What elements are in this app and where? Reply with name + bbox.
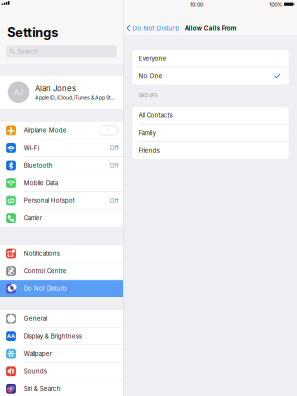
staticText: Off bbox=[109, 197, 118, 204]
staticText: AJ bbox=[14, 88, 23, 97]
button[interactable]: Control Centre bbox=[0, 263, 123, 280]
button[interactable]: Notifications bbox=[0, 245, 123, 262]
staticText: Settings bbox=[7, 25, 58, 40]
button[interactable]: Wallpaper bbox=[0, 345, 123, 362]
button[interactable]: Personal Hotspot bbox=[0, 192, 123, 209]
staticText: Off bbox=[109, 161, 118, 169]
button[interactable]: Airplane Mode bbox=[0, 122, 123, 139]
button[interactable]: No One bbox=[132, 67, 289, 84]
button[interactable]: All Contacts bbox=[132, 107, 289, 124]
staticText: Wi-Fi bbox=[24, 144, 39, 152]
button[interactable]: Do Not Disturb bbox=[0, 280, 123, 297]
button[interactable]: Friends bbox=[132, 142, 289, 159]
staticText: GROUPS bbox=[139, 93, 158, 98]
staticText: Mobile Data bbox=[24, 179, 58, 187]
staticText: Everyone bbox=[139, 55, 167, 62]
staticText: Alan Jones bbox=[35, 84, 76, 93]
staticText: Search bbox=[17, 48, 38, 55]
button[interactable]: Bluetooth bbox=[0, 157, 123, 174]
button[interactable]: AJ bbox=[0, 76, 123, 109]
button[interactable]: Mobile Data bbox=[0, 174, 123, 191]
staticText: All Contacts bbox=[139, 112, 173, 119]
staticText: Sounds bbox=[24, 368, 47, 375]
staticText: Wallpaper bbox=[24, 350, 52, 357]
button[interactable]: Family bbox=[132, 124, 289, 141]
staticText: Personal Hotspot bbox=[24, 197, 75, 204]
staticText: Off bbox=[109, 144, 118, 152]
staticText: Display & Brightness bbox=[24, 332, 82, 340]
staticText: Notifications bbox=[24, 250, 60, 257]
staticText: Carrier bbox=[24, 214, 42, 222]
staticText: Do Not Disturb bbox=[24, 285, 67, 292]
button[interactable]: Siri & Search bbox=[0, 380, 123, 396]
staticText: Airplane Mode bbox=[24, 127, 67, 134]
staticText: Do Not Disturb bbox=[132, 24, 179, 32]
staticText: 10:00 bbox=[190, 1, 203, 8]
button[interactable]: Sounds bbox=[0, 363, 123, 380]
staticText: Control Centre bbox=[24, 267, 67, 275]
staticText: Bluetooth bbox=[24, 162, 53, 169]
staticText: AA bbox=[7, 333, 15, 339]
button[interactable]: Everyone bbox=[132, 50, 289, 67]
staticText: General bbox=[24, 315, 47, 322]
button[interactable]: AA bbox=[0, 328, 123, 345]
staticText: Family bbox=[139, 129, 156, 137]
button[interactable]: Do Not Disturb bbox=[124, 21, 185, 35]
staticText: Friends bbox=[139, 147, 160, 154]
staticText: No One bbox=[139, 72, 163, 80]
button[interactable]: Carrier bbox=[0, 210, 123, 227]
button[interactable]: Wi-Fi bbox=[0, 139, 123, 156]
staticText: 100% bbox=[269, 1, 282, 8]
staticText: Allow Calls From bbox=[185, 24, 237, 32]
staticText: Siri & Search bbox=[24, 385, 61, 392]
staticText: Apple ID, iCloud, iTunes & App St... bbox=[35, 94, 114, 101]
button[interactable]: General bbox=[0, 310, 123, 327]
